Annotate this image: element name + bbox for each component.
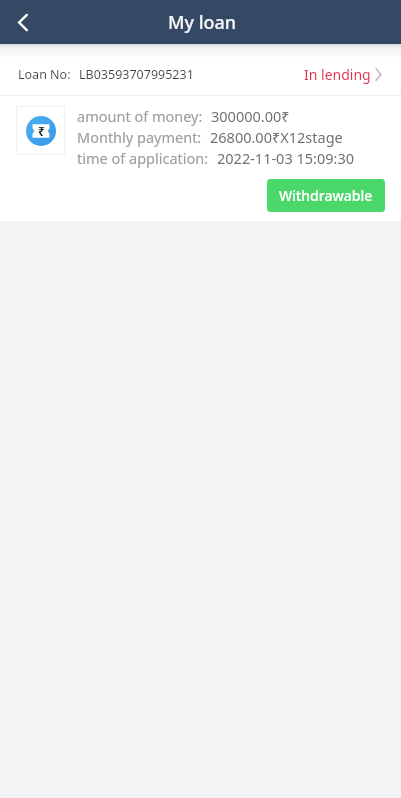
button[interactable]: Loan No:: [0, 44, 401, 95]
staticText: My loan: [168, 10, 237, 35]
staticText: Withdrawable: [279, 186, 373, 205]
button[interactable]: Back: [0, 0, 46, 44]
button[interactable]: Withdrawable: [267, 179, 385, 212]
staticText: ₹: [38, 123, 45, 139]
staticText: 300000.00₹: [211, 106, 290, 126]
staticText: amount of money:: [77, 106, 203, 126]
staticText: time of application:: [77, 148, 209, 168]
staticText: 2022-11-03 15:09:30: [217, 148, 354, 168]
staticText: Loan No:: [18, 66, 71, 83]
staticText: LB03593707995231: [79, 66, 194, 83]
staticText: Monthly payment:: [77, 127, 202, 147]
staticText: 26800.00₹X12stage: [210, 127, 343, 147]
staticText: In lending: [304, 65, 371, 84]
